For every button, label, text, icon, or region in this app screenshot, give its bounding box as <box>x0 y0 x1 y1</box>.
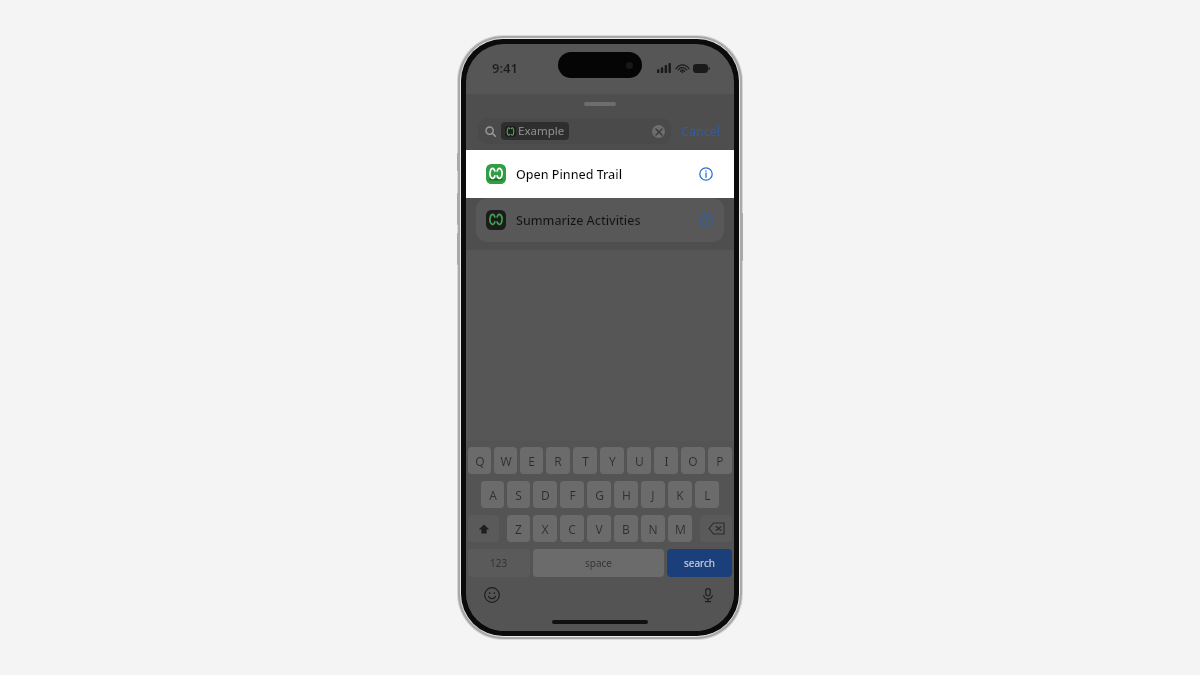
staticText: P <box>716 453 724 469</box>
staticText: space <box>585 556 612 570</box>
staticText: 123 <box>490 556 508 570</box>
button[interactable]: More info <box>698 166 714 182</box>
staticText: Open Pinned Trail <box>516 166 623 183</box>
staticText: Q <box>475 453 485 469</box>
button[interactable]: Open Pinned Trail <box>476 154 724 194</box>
button[interactable]: Clear search <box>652 125 665 138</box>
button[interactable]: K <box>668 481 692 508</box>
button[interactable]: M <box>668 515 692 542</box>
staticText: W <box>500 453 512 469</box>
button[interactable]: B <box>614 515 638 542</box>
staticText: C <box>568 521 576 537</box>
staticText: S <box>515 487 522 503</box>
staticText: E <box>528 453 535 469</box>
button[interactable]: More info <box>698 212 714 228</box>
staticText: O <box>688 453 698 469</box>
button[interactable]: C <box>560 515 584 542</box>
button[interactable]: Dictate <box>698 585 718 605</box>
button[interactable]: search <box>667 549 732 577</box>
button[interactable]: I <box>654 447 678 474</box>
staticText: Z <box>515 521 522 537</box>
button[interactable]: Backspace <box>700 515 732 542</box>
staticText: 9:41 <box>492 59 518 77</box>
staticText: J <box>651 487 655 503</box>
button[interactable]: L <box>695 481 719 508</box>
button[interactable]: V <box>587 515 611 542</box>
button[interactable]: Q <box>468 447 491 474</box>
button[interactable]: Summarize Activities <box>476 198 724 242</box>
button[interactable]: J <box>641 481 665 508</box>
button[interactable]: 123 <box>468 549 530 577</box>
button[interactable]: X <box>533 515 557 542</box>
button[interactable]: D <box>533 481 557 508</box>
staticText: V <box>595 521 603 537</box>
button[interactable]: W <box>494 447 517 474</box>
button[interactable]: Shift <box>468 515 499 542</box>
staticText: G <box>595 487 604 503</box>
staticText: H <box>622 487 631 503</box>
staticText: A <box>489 487 497 503</box>
staticText: T <box>582 453 589 469</box>
button[interactable]: R <box>546 447 570 474</box>
staticText: L <box>704 487 711 503</box>
button[interactable]: Emoji <box>482 585 502 605</box>
button[interactable]: U <box>627 447 651 474</box>
button[interactable]: T <box>573 447 597 474</box>
staticText: Y <box>609 453 616 469</box>
button[interactable]: A <box>481 481 504 508</box>
button[interactable]: space <box>533 549 664 577</box>
button[interactable]: S <box>507 481 530 508</box>
button[interactable]: N <box>641 515 665 542</box>
staticText: F <box>569 487 576 503</box>
staticText: search <box>684 556 715 570</box>
button[interactable]: O <box>681 447 705 474</box>
staticText: D <box>541 487 550 503</box>
staticText: Cancel <box>681 123 720 140</box>
button[interactable]: H <box>614 481 638 508</box>
button[interactable]: Y <box>600 447 624 474</box>
staticText: M <box>675 521 686 537</box>
staticText: Summarize Activities <box>516 212 641 229</box>
button[interactable]: F <box>560 481 584 508</box>
staticText: I <box>664 453 669 469</box>
staticText: R <box>554 453 562 469</box>
button[interactable]: Z <box>507 515 530 542</box>
button[interactable]: E <box>520 447 543 474</box>
staticText: Example <box>518 123 565 139</box>
button[interactable]: Example <box>478 118 671 144</box>
button[interactable]: G <box>587 481 611 508</box>
staticText: N <box>648 521 658 537</box>
staticText: U <box>635 453 644 469</box>
staticText: X <box>541 521 549 537</box>
button[interactable]: Cancel <box>679 119 722 144</box>
button[interactable]: P <box>708 447 732 474</box>
staticText: B <box>622 521 630 537</box>
staticText: K <box>676 487 684 503</box>
